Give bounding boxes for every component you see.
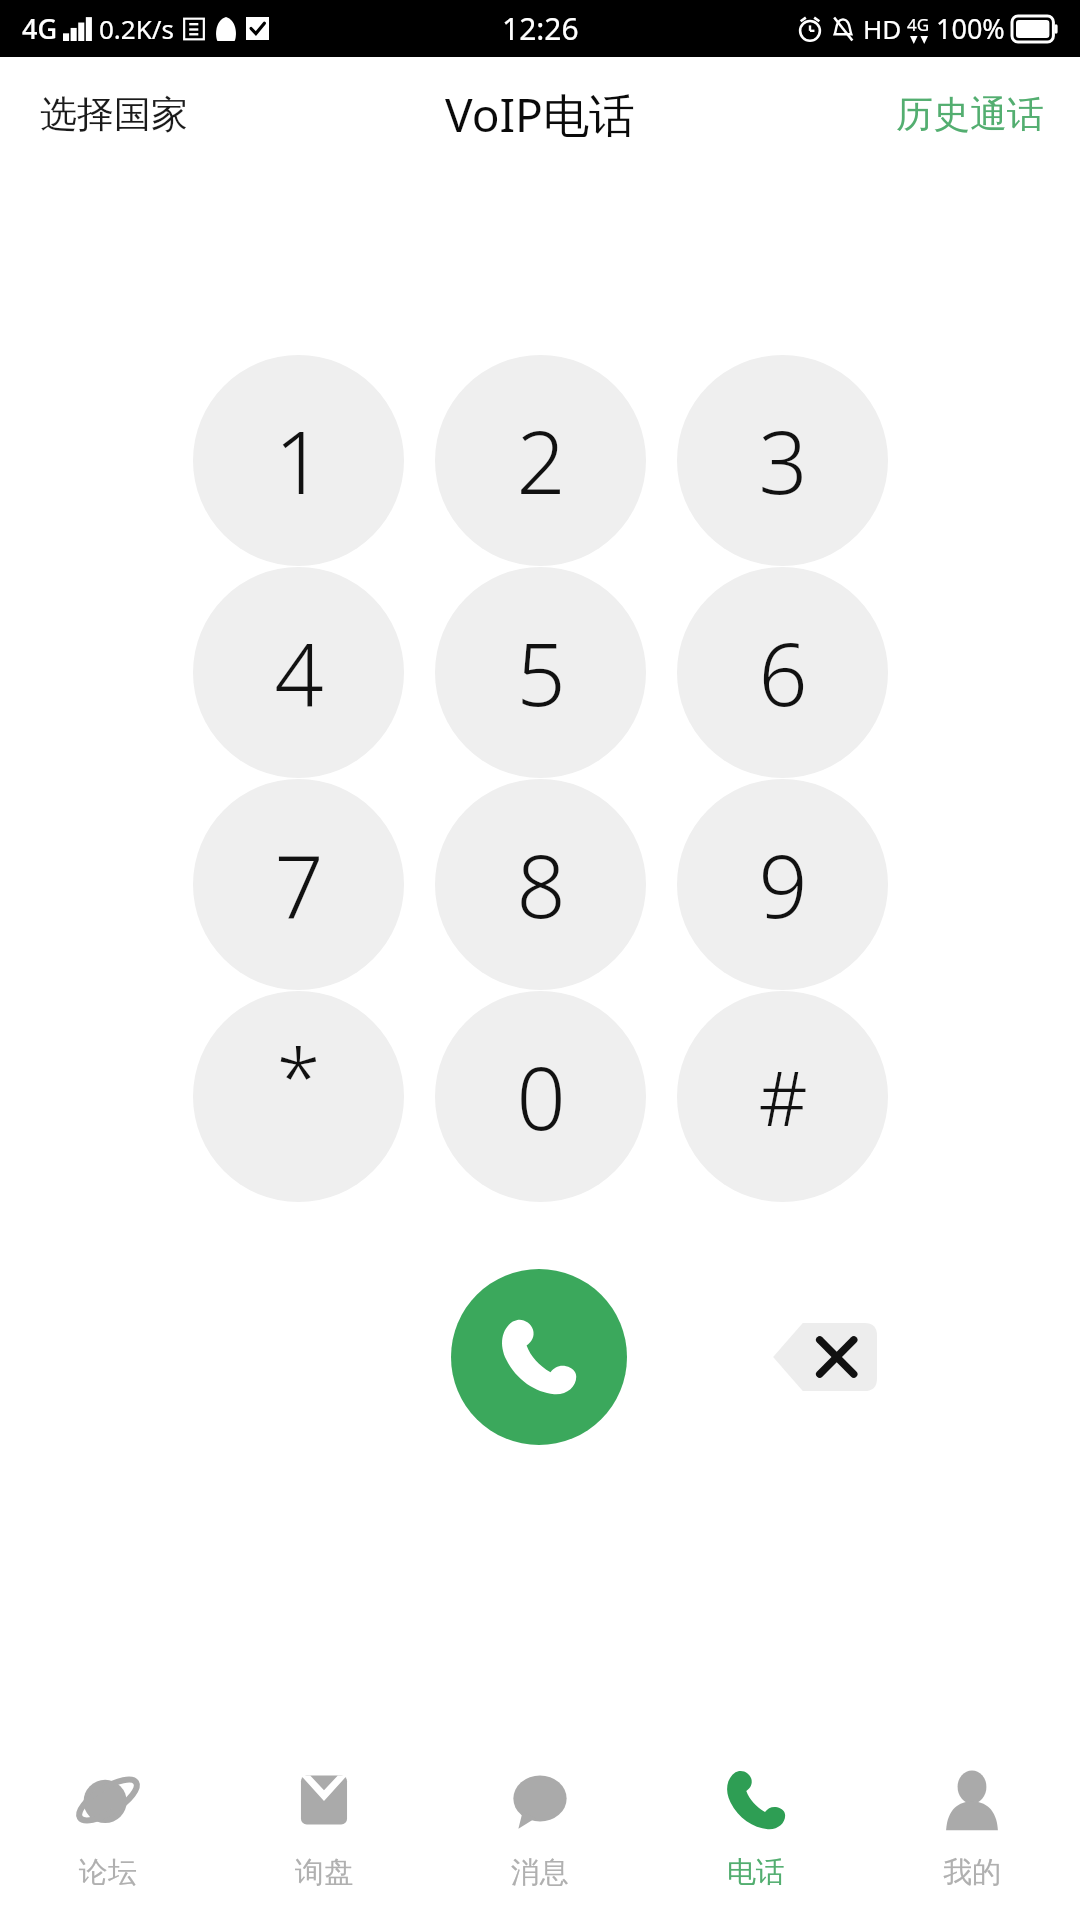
staticText: 5 xyxy=(516,614,566,731)
button[interactable]: 8 xyxy=(435,779,646,990)
staticText: 100% xyxy=(936,10,1005,47)
staticText: 论坛 xyxy=(79,1854,137,1891)
staticText: 2 xyxy=(516,402,566,519)
button[interactable]: 1 xyxy=(193,355,404,566)
staticText: 消息 xyxy=(511,1854,569,1891)
staticText: 4G xyxy=(907,13,930,36)
staticText: 0 xyxy=(516,1038,566,1155)
staticText: 电话 xyxy=(727,1854,785,1891)
button[interactable]: 0 xyxy=(435,991,646,1202)
button[interactable]: 5 xyxy=(435,567,646,778)
staticText: 历史通话 xyxy=(896,91,1044,138)
button[interactable]: 电话 xyxy=(648,1720,864,1920)
staticText: 4 xyxy=(274,614,324,731)
staticText: HD xyxy=(863,11,902,46)
staticText: 0.2K/s xyxy=(99,11,174,46)
staticText: 询盘 xyxy=(295,1854,353,1891)
button[interactable]: 我的 xyxy=(864,1720,1080,1920)
button[interactable]: 询盘 xyxy=(216,1720,432,1920)
staticText: VoIP电话 xyxy=(445,83,635,146)
button[interactable]: 历史通话 xyxy=(876,77,1080,152)
staticText: 7 xyxy=(274,826,324,943)
button[interactable]: 拨打电话 xyxy=(451,1269,627,1445)
button[interactable]: 消息 xyxy=(432,1720,648,1920)
staticText: 我的 xyxy=(943,1854,1001,1891)
staticText: 4G xyxy=(22,10,58,47)
button[interactable]: 9 xyxy=(677,779,888,990)
button[interactable]: # xyxy=(677,991,888,1202)
staticText: 选择国家 xyxy=(40,91,188,138)
button[interactable]: 4 xyxy=(193,567,404,778)
staticText: 9 xyxy=(758,826,808,943)
staticText: 8 xyxy=(516,826,566,943)
button[interactable]: 7 xyxy=(193,779,404,990)
staticText: * xyxy=(276,1020,321,1129)
button[interactable]: 6 xyxy=(677,567,888,778)
staticText: # xyxy=(758,1045,808,1149)
button[interactable]: 3 xyxy=(677,355,888,566)
staticText: 12:26 xyxy=(502,8,579,49)
button[interactable]: 论坛 xyxy=(0,1720,216,1920)
staticText: 6 xyxy=(758,614,808,731)
button[interactable]: 删除 xyxy=(766,1311,882,1403)
staticText: 3 xyxy=(758,402,808,519)
staticText: 1 xyxy=(274,402,324,519)
button[interactable]: 2 xyxy=(435,355,646,566)
button[interactable]: 选择国家 xyxy=(0,77,208,152)
button[interactable]: * xyxy=(193,991,404,1202)
